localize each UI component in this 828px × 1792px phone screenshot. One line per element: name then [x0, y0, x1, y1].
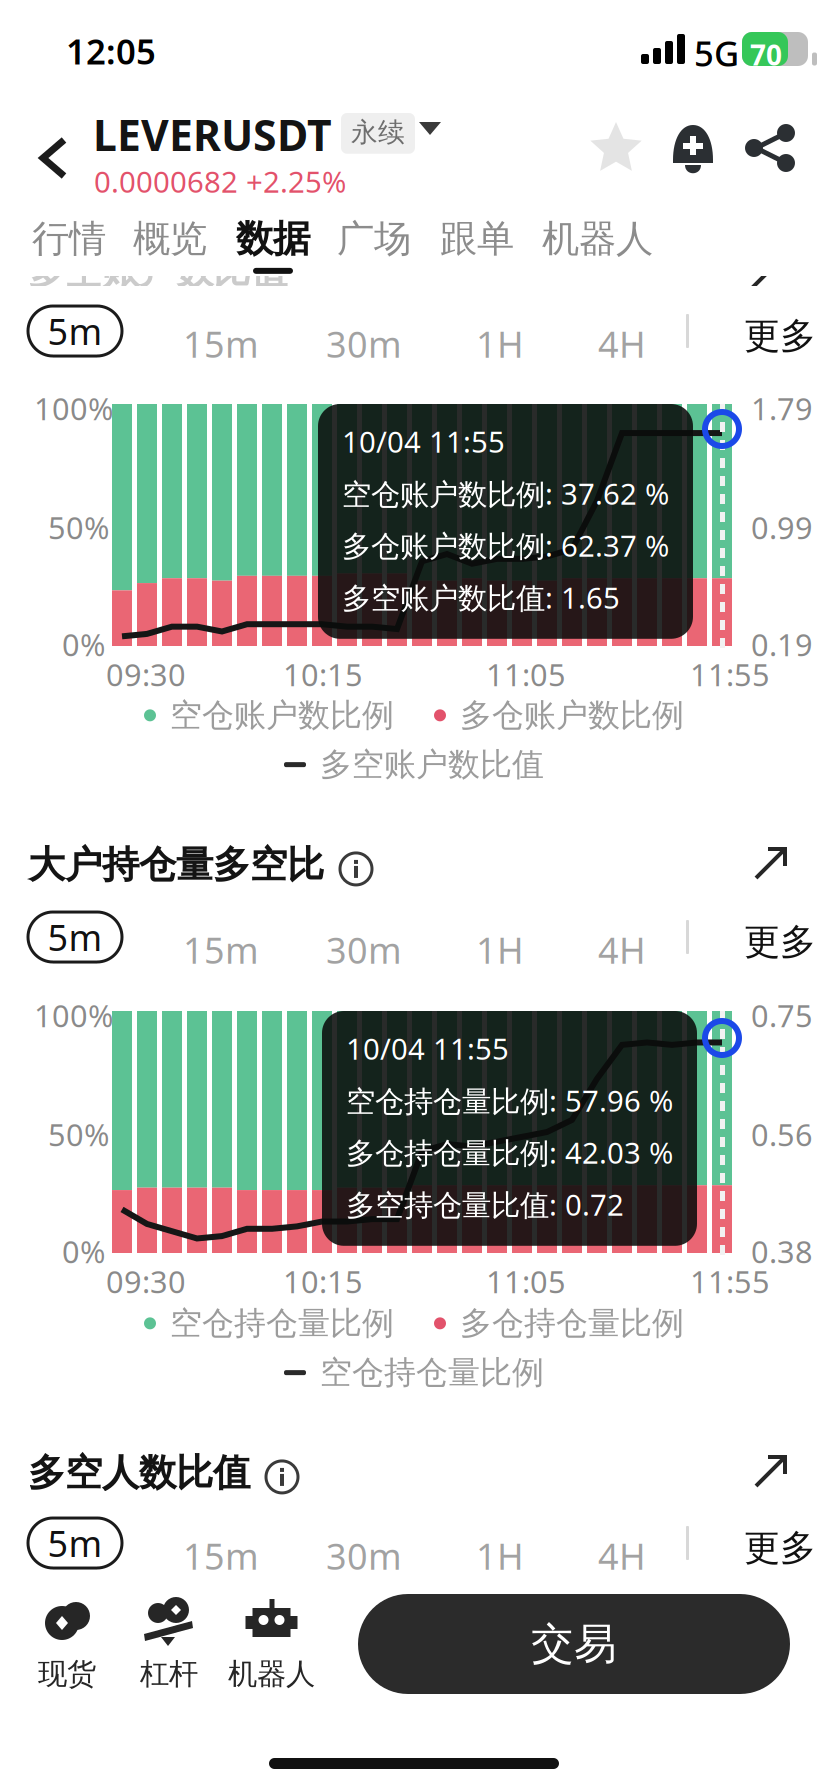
staticText: 多空账户数比值 — [320, 745, 544, 784]
staticText: 10:15 — [283, 1261, 363, 1302]
staticText: 更多 — [744, 314, 816, 358]
staticText: 更多 — [744, 1526, 816, 1570]
button[interactable]: 数据 — [236, 216, 310, 274]
staticText: 30m — [326, 1532, 402, 1580]
button[interactable]: 1H — [470, 314, 530, 374]
staticText: 空仓持仓量比例: 57.96 % — [346, 1081, 673, 1120]
staticText: 0.99 — [751, 507, 813, 548]
staticText: 5m — [47, 1519, 102, 1567]
staticText: 机器人 — [228, 1656, 315, 1692]
button[interactable]: 5m — [28, 912, 122, 962]
button[interactable]: 1H — [470, 1526, 530, 1586]
button[interactable]: 机器人 — [542, 216, 653, 274]
button[interactable]: 4H — [592, 1526, 652, 1586]
staticText: 0% — [62, 1231, 105, 1272]
staticText: 09:30 — [106, 654, 186, 695]
staticText: 1H — [476, 320, 524, 368]
button[interactable]: 更多 — [744, 920, 816, 964]
button[interactable]: 更多 — [744, 314, 816, 358]
button[interactable]: Open full chart — [748, 1450, 792, 1494]
staticText: 现货 — [38, 1656, 96, 1692]
staticText: 100% — [34, 995, 113, 1036]
staticText: 5G — [694, 30, 739, 76]
staticText: 多空账户数比值: 1.65 — [342, 578, 620, 617]
staticText: 概览 — [133, 216, 207, 262]
staticText: 15m — [183, 1532, 259, 1580]
staticText: LEVERUSDT — [93, 106, 332, 163]
staticText: 行情 — [32, 216, 106, 262]
button[interactable]: 5m — [28, 306, 122, 356]
button[interactable]: 行情 — [32, 216, 106, 274]
staticText: 1.79 — [751, 388, 813, 429]
button[interactable]: 4H — [592, 314, 652, 374]
staticText: 30m — [326, 926, 402, 974]
staticText: 0% — [62, 624, 105, 665]
button[interactable]: 30m — [320, 920, 408, 980]
button[interactable]: 交易 — [358, 1594, 790, 1694]
staticText: 多仓持仓量比例: 42.03 % — [346, 1133, 673, 1172]
staticText: 1H — [476, 926, 524, 974]
button[interactable]: Open full chart — [748, 842, 792, 886]
staticText: 11:05 — [486, 654, 566, 695]
staticText: 5m — [47, 307, 102, 355]
button[interactable]: 跟单 — [440, 216, 514, 274]
staticText: 广场 — [337, 216, 411, 262]
staticText: 4H — [598, 320, 646, 368]
staticText: 4H — [598, 1532, 646, 1580]
staticText: 1H — [476, 1532, 524, 1580]
staticText: 10:15 — [283, 654, 363, 695]
button[interactable]: Share — [742, 120, 798, 176]
staticText: 100% — [34, 388, 113, 429]
staticText: 70 — [750, 36, 782, 73]
staticText: 09:30 — [106, 1261, 186, 1302]
staticText: 15m — [183, 320, 259, 368]
staticText: 交易 — [531, 1618, 617, 1670]
staticText: 多仓账户数比例: 62.37 % — [342, 526, 669, 565]
staticText: 0.56 — [751, 1114, 813, 1155]
button[interactable]: 15m — [177, 314, 265, 374]
staticText: 15m — [183, 926, 259, 974]
staticText: 4H — [598, 926, 646, 974]
button[interactable]: 机器人 — [228, 1596, 315, 1692]
button[interactable]: Back — [22, 114, 86, 202]
staticText: 多仓持仓量比例 — [460, 1304, 684, 1343]
staticText: 永续 — [351, 116, 405, 149]
button[interactable]: 30m — [320, 314, 408, 374]
button[interactable]: 杠杆 — [140, 1596, 198, 1692]
staticText: 空仓账户数比例 — [170, 696, 394, 735]
button[interactable]: 现货 — [38, 1596, 96, 1692]
staticText: 30m — [326, 320, 402, 368]
staticText: 机器人 — [542, 216, 653, 262]
staticText: 大户持仓量多空比 — [28, 842, 324, 888]
staticText: 大户持仓量多空比 — [28, 842, 324, 888]
staticText: 多空持仓量比值: 0.72 — [346, 1185, 624, 1224]
staticText: 多空账户数比值 — [28, 248, 287, 294]
staticText: 10/04 11:55 — [342, 422, 505, 461]
staticText: 50% — [48, 1114, 109, 1155]
staticText: 11:55 — [690, 1261, 770, 1302]
staticText: 空仓持仓量比例 — [320, 1353, 544, 1392]
staticText: 杠杆 — [140, 1656, 198, 1692]
staticText: 跟单 — [440, 216, 514, 262]
staticText: 0.19 — [751, 624, 813, 665]
button[interactable]: 概览 — [133, 216, 207, 274]
button[interactable]: 1H — [470, 920, 530, 980]
button[interactable]: 更多 — [744, 1526, 816, 1570]
staticText: 更多 — [744, 920, 816, 964]
button[interactable]: 15m — [177, 1526, 265, 1586]
button[interactable]: 30m — [320, 1526, 408, 1586]
button[interactable]: 5m — [28, 1518, 122, 1568]
staticText: 0.75 — [751, 995, 813, 1036]
staticText: 50% — [48, 507, 109, 548]
button[interactable]: Favourite — [588, 120, 644, 176]
staticText: 11:55 — [690, 654, 770, 695]
staticText: 11:05 — [486, 1261, 566, 1302]
button[interactable]: 15m — [177, 920, 265, 980]
staticText: 多空人数比值 — [28, 1450, 250, 1496]
staticText: 10/04 11:55 — [346, 1029, 509, 1068]
staticText: 0.38 — [751, 1231, 813, 1272]
button[interactable]: Price alert — [664, 118, 722, 178]
button[interactable]: 4H — [592, 920, 652, 980]
staticText: 多空人数比值 — [28, 1450, 250, 1496]
button[interactable]: 广场 — [337, 216, 411, 274]
